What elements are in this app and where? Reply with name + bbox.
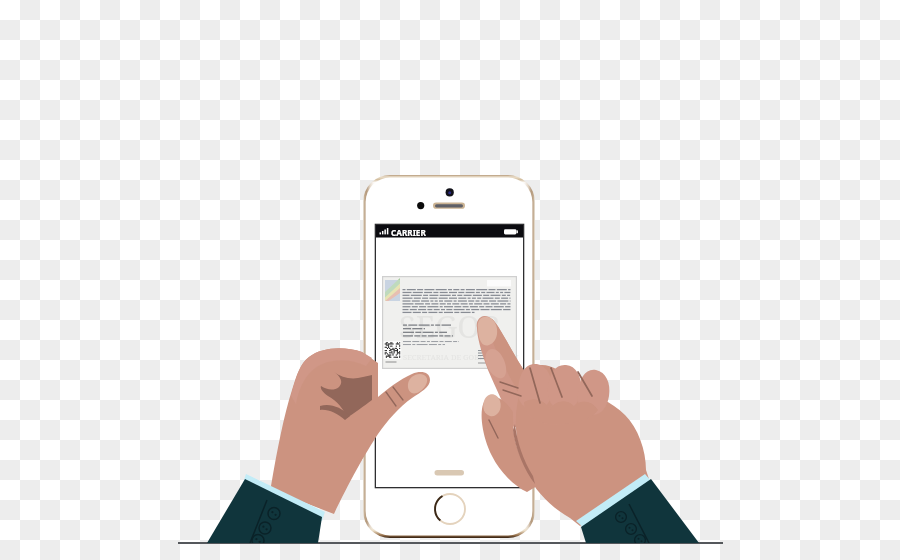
button[interactable]: Open certificate document — [382, 276, 517, 369]
button[interactable]: Home — [433, 492, 467, 526]
